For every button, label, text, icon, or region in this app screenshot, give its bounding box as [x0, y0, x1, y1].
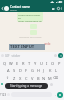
button[interactable]: V — [29, 74, 35, 82]
staticText: GIF sticker — [5, 54, 21, 58]
staticText: Y — [34, 61, 37, 66]
button[interactable]: More options — [60, 7, 63, 10]
button[interactable]: Start typing a message — [5, 83, 48, 89]
staticText: ⌫ — [53, 76, 59, 80]
button[interactable]: M — [47, 74, 53, 82]
button[interactable]: Settings — [54, 54, 57, 57]
button[interactable]: E — [14, 59, 20, 67]
button[interactable]: Call — [56, 6, 60, 10]
button[interactable]: Q — [2, 59, 8, 67]
button[interactable]: K — [47, 67, 53, 74]
button[interactable]: I — [44, 59, 50, 67]
staticText: message sent today — [19, 35, 42, 38]
staticText: Q — [3, 61, 7, 66]
button[interactable]: S — [11, 67, 17, 74]
staticText: . — [55, 92, 56, 97]
button[interactable]: R — [20, 59, 26, 67]
button[interactable]: T — [26, 59, 32, 67]
button[interactable]: H — [35, 67, 41, 74]
button[interactable]: F — [23, 67, 29, 74]
staticText: online — [10, 9, 17, 12]
staticText: D — [19, 68, 22, 73]
staticText: A — [7, 68, 10, 73]
button[interactable]: U — [38, 59, 44, 67]
staticText: O — [51, 61, 55, 66]
staticText: J — [43, 68, 45, 73]
button[interactable]: Y — [32, 59, 38, 67]
button[interactable]: . — [53, 90, 57, 99]
button[interactable]: X — [17, 74, 23, 82]
staticText: W — [9, 61, 13, 66]
button[interactable]: Back — [0, 6, 4, 10]
staticText: TEXT INPUT — [10, 44, 35, 50]
staticText: N — [42, 76, 46, 81]
button[interactable]: ⇧ — [5, 74, 11, 82]
button[interactable]: Z — [11, 74, 17, 82]
staticText: G — [31, 68, 34, 73]
staticText: Start typing a message — [10, 84, 43, 88]
staticText: Lorem ipsum dolor sit amet consectetur e… — [18, 13, 42, 22]
staticText: C — [25, 76, 28, 81]
button[interactable]: C — [23, 74, 29, 82]
button[interactable]: ⌫ — [53, 74, 59, 82]
staticText: K — [49, 68, 52, 73]
staticText: S — [13, 68, 16, 73]
button[interactable]: O — [50, 59, 56, 67]
button[interactable]: B — [35, 74, 41, 82]
button[interactable]: J — [41, 67, 47, 74]
button[interactable]: W — [8, 59, 14, 67]
staticText: M — [48, 76, 52, 81]
staticText: Contact name — [10, 5, 31, 9]
button[interactable]: Enter — [57, 92, 63, 98]
button[interactable]: P — [56, 59, 62, 67]
button[interactable]: Google search — [1, 54, 4, 57]
staticText: I — [46, 61, 48, 66]
button[interactable]: Video call — [51, 6, 56, 11]
staticText: H — [37, 68, 40, 73]
staticText: E — [16, 61, 19, 66]
button[interactable]: Voice input — [58, 53, 63, 58]
staticText: U — [40, 61, 43, 66]
staticText: V — [31, 76, 34, 81]
button[interactable]: L — [53, 67, 59, 74]
staticText: P — [58, 61, 61, 66]
staticText: T — [28, 61, 31, 66]
button[interactable]: N — [41, 74, 47, 82]
staticText: Z — [13, 76, 16, 81]
staticText: L — [55, 68, 58, 73]
button[interactable]: G — [29, 67, 35, 74]
staticText: X — [19, 76, 22, 81]
staticText: B — [37, 76, 40, 81]
staticText: ⇧ — [6, 76, 10, 80]
staticText: ?123 — [0, 93, 7, 97]
button[interactable]: A — [5, 67, 11, 74]
button[interactable]: ?123 — [0, 90, 7, 99]
staticText: undo — [44, 42, 51, 46]
staticText: R — [22, 61, 25, 66]
button[interactable]: TEXT INPUT — [9, 44, 45, 50]
staticText: F — [25, 68, 28, 73]
button[interactable]: D — [17, 67, 23, 74]
